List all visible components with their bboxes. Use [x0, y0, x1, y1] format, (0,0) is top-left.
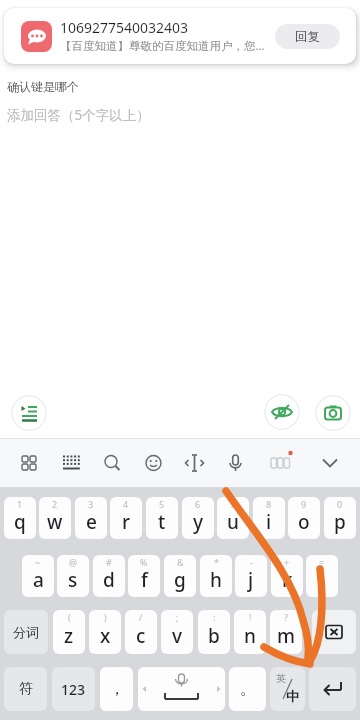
- staticText: ?: [284, 611, 288, 623]
- button[interactable]: 符: [4, 667, 47, 711]
- staticText: +: [284, 556, 290, 568]
- staticText: 确认键是哪个: [7, 79, 79, 94]
- staticText: =: [319, 556, 325, 568]
- button[interactable]: *: [200, 555, 232, 597]
- button[interactable]: :: [198, 610, 230, 654]
- button[interactable]: 1: [4, 497, 36, 539]
- staticText: l: [319, 567, 325, 593]
- button[interactable]: %: [128, 555, 160, 597]
- staticText: r: [122, 509, 131, 535]
- staticText: 6: [195, 498, 201, 510]
- button[interactable]: [11, 395, 47, 431]
- button[interactable]: ?: [270, 610, 302, 654]
- button[interactable]: 9: [288, 497, 320, 539]
- staticText: n: [244, 623, 256, 649]
- staticText: k: [282, 567, 293, 593]
- button[interactable]: (: [53, 610, 85, 654]
- staticText: s: [68, 567, 78, 593]
- staticText: y: [193, 509, 204, 535]
- staticText: 123: [61, 680, 86, 699]
- staticText: z: [64, 623, 74, 649]
- staticText: 中: [286, 688, 299, 704]
- staticText: 英: [276, 672, 286, 685]
- staticText: b: [208, 623, 220, 649]
- button[interactable]: 。: [229, 667, 266, 711]
- staticText: i: [266, 509, 272, 535]
- staticText: 5: [159, 498, 165, 510]
- button[interactable]: 123: [52, 667, 95, 711]
- button[interactable]: 0: [324, 497, 356, 539]
- button[interactable]: @: [57, 555, 89, 597]
- button[interactable]: 4: [110, 497, 142, 539]
- button[interactable]: 6: [182, 497, 214, 539]
- staticText: ~: [35, 556, 41, 568]
- button[interactable]: !: [234, 610, 266, 654]
- staticText: 回复: [295, 29, 320, 45]
- staticText: 【百度知道】尊敬的百度知道用户，您…: [60, 38, 265, 54]
- staticText: 分词: [13, 624, 39, 640]
- staticText: 添加回答（5个字以上）: [7, 106, 150, 124]
- button[interactable]: 8: [253, 497, 285, 539]
- staticText: %: [140, 556, 148, 568]
- staticText: e: [86, 509, 97, 535]
- button[interactable]: ，: [100, 667, 133, 711]
- staticText: -: [250, 556, 253, 568]
- staticText: ): [104, 611, 107, 623]
- button[interactable]: 5: [146, 497, 178, 539]
- button[interactable]: ~: [22, 555, 54, 597]
- staticText: *: [214, 556, 219, 568]
- staticText: &: [177, 556, 184, 568]
- button[interactable]: 1069277540032403: [4, 8, 356, 64]
- button[interactable]: +: [271, 555, 303, 597]
- staticText: a: [33, 567, 44, 593]
- button[interactable]: 7: [217, 497, 249, 539]
- button[interactable]: 2: [39, 497, 71, 539]
- staticText: ，: [109, 679, 125, 699]
- staticText: 1069277540032403: [60, 18, 189, 37]
- staticText: 3: [88, 498, 94, 510]
- button[interactable]: &: [164, 555, 196, 597]
- button[interactable]: -: [235, 555, 267, 597]
- staticText: m: [277, 623, 295, 649]
- staticText: f: [141, 567, 148, 593]
- staticText: h: [210, 567, 222, 593]
- button[interactable]: [309, 667, 356, 711]
- staticText: @: [69, 556, 78, 568]
- staticText: !: [249, 611, 252, 623]
- staticText: d: [103, 567, 115, 593]
- button[interactable]: [315, 395, 351, 431]
- staticText: q: [14, 509, 26, 535]
- staticText: 9: [301, 498, 307, 510]
- staticText: #: [106, 556, 112, 568]
- button[interactable]: [138, 667, 225, 711]
- staticText: ;: [176, 611, 179, 623]
- button[interactable]: ): [89, 610, 121, 654]
- button[interactable]: ;: [161, 610, 193, 654]
- staticText: :: [213, 611, 216, 623]
- staticText: 符: [19, 680, 33, 698]
- staticText: 。: [240, 679, 256, 699]
- button[interactable]: [312, 610, 356, 654]
- button[interactable]: 分词: [4, 610, 48, 654]
- staticText: 2: [52, 498, 58, 510]
- button[interactable]: =: [306, 555, 338, 597]
- button[interactable]: 回复: [275, 24, 340, 49]
- staticText: 0: [337, 498, 343, 510]
- staticText: /: [139, 611, 143, 623]
- button[interactable]: [264, 394, 300, 430]
- button[interactable]: /: [125, 610, 157, 654]
- button[interactable]: 3: [75, 497, 107, 539]
- staticText: (: [68, 611, 71, 623]
- staticText: u: [227, 509, 239, 535]
- button[interactable]: #: [93, 555, 125, 597]
- staticText: x: [100, 623, 111, 649]
- staticText: o: [298, 509, 310, 535]
- button[interactable]: 英: [270, 667, 305, 711]
- staticText: 1: [17, 498, 23, 510]
- staticText: j: [248, 567, 254, 593]
- staticText: 4: [123, 498, 129, 510]
- staticText: v: [172, 623, 183, 649]
- staticText: c: [136, 623, 146, 649]
- staticText: 8: [266, 498, 272, 510]
- staticText: 7: [230, 498, 236, 510]
